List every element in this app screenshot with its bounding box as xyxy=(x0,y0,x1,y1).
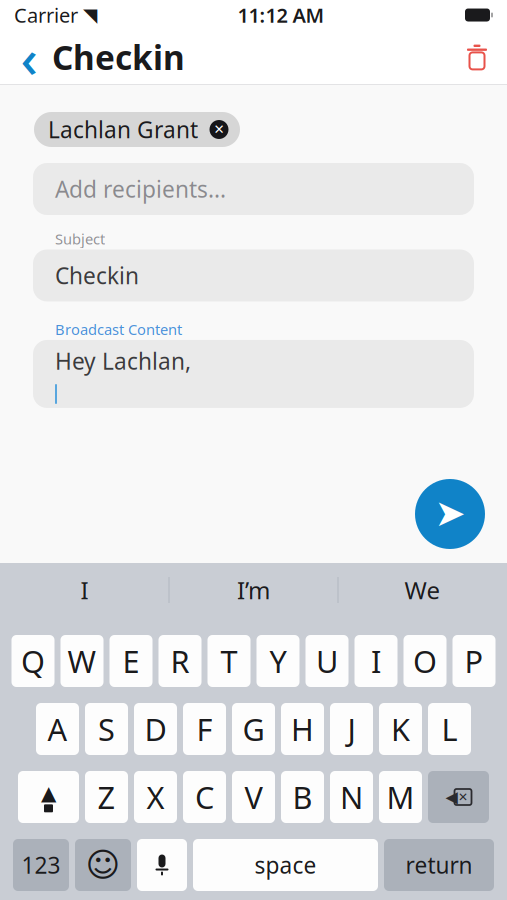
button[interactable]: P xyxy=(452,635,495,687)
button[interactable]: D xyxy=(134,703,177,755)
staticText: X xyxy=(146,777,164,817)
staticText: G xyxy=(242,709,264,749)
staticText: Hey Lachlan, xyxy=(55,346,191,376)
staticText: space xyxy=(254,850,316,880)
button[interactable]: Q xyxy=(11,635,54,687)
staticText: 123 xyxy=(21,850,60,880)
button[interactable]: I xyxy=(0,565,168,615)
staticText: D xyxy=(144,709,166,749)
button[interactable]: Send xyxy=(415,479,485,549)
button[interactable]: B xyxy=(281,771,324,823)
button[interactable]: X xyxy=(134,771,177,823)
staticText: ▲ xyxy=(41,782,56,804)
button[interactable]: E xyxy=(109,635,152,687)
button[interactable]: G xyxy=(232,703,275,755)
staticText: I’m xyxy=(237,574,270,606)
button[interactable]: Delete xyxy=(428,771,489,823)
staticText: Broadcast Content xyxy=(55,319,182,339)
button[interactable]: Y xyxy=(256,635,299,687)
button[interactable]: Hey Lachlan, xyxy=(33,340,474,408)
staticText: M xyxy=(386,777,414,817)
staticText: L xyxy=(441,709,457,749)
button[interactable]: R xyxy=(158,635,201,687)
button[interactable]: Remove recipient xyxy=(209,119,229,139)
button[interactable]: I’m xyxy=(169,565,337,615)
staticText: ◀ xyxy=(445,788,457,806)
button[interactable]: A xyxy=(36,703,79,755)
staticText: We xyxy=(404,574,440,606)
staticText: C xyxy=(195,777,214,817)
staticText: B xyxy=(292,777,312,817)
button[interactable]: J xyxy=(330,703,373,755)
staticText: ➤ xyxy=(434,492,465,534)
staticText: 11:12 AM xyxy=(237,2,324,28)
staticText: Z xyxy=(97,777,115,817)
staticText: Y xyxy=(269,641,286,681)
button[interactable]: V xyxy=(232,771,275,823)
button[interactable]: W xyxy=(60,635,103,687)
button[interactable]: Back xyxy=(12,34,46,80)
staticText: A xyxy=(47,709,67,749)
staticText: R xyxy=(170,641,189,681)
staticText: I xyxy=(80,574,88,606)
staticText: ◥ xyxy=(83,4,97,26)
button[interactable]: M xyxy=(379,771,422,823)
button[interactable]: return xyxy=(384,839,494,891)
button[interactable]: F xyxy=(183,703,226,755)
staticText: Add recipients... xyxy=(55,174,226,204)
button[interactable]: Add recipients... xyxy=(33,163,474,215)
staticText: ✕ xyxy=(458,790,468,804)
staticText: ✕ xyxy=(213,122,224,137)
staticText: E xyxy=(122,641,139,681)
button[interactable]: Emoji xyxy=(75,839,131,891)
staticText: Lachlan Grant xyxy=(48,114,198,144)
button[interactable]: Dictation xyxy=(137,839,187,891)
staticText: W xyxy=(67,641,96,681)
button[interactable]: Z xyxy=(85,771,128,823)
staticText: I xyxy=(371,641,381,681)
button[interactable]: Shift xyxy=(18,771,79,823)
button[interactable]: L xyxy=(428,703,471,755)
staticText: H xyxy=(291,709,314,749)
button[interactable]: space xyxy=(193,839,378,891)
staticText: ‹ xyxy=(20,22,37,92)
button[interactable]: N xyxy=(330,771,373,823)
staticText: S xyxy=(98,709,115,749)
button[interactable]: H xyxy=(281,703,324,755)
staticText: Subject xyxy=(55,229,105,248)
staticText: N xyxy=(340,777,363,817)
staticText: F xyxy=(196,709,212,749)
button[interactable]: S xyxy=(85,703,128,755)
staticText: V xyxy=(244,777,262,817)
button[interactable]: O xyxy=(403,635,446,687)
staticText: Carrier xyxy=(14,2,78,28)
button[interactable]: I xyxy=(354,635,397,687)
button[interactable]: C xyxy=(183,771,226,823)
staticText: Checkin xyxy=(55,260,139,290)
button[interactable]: 123 xyxy=(13,839,69,891)
staticText: K xyxy=(391,709,410,749)
staticText: O xyxy=(413,641,437,681)
button[interactable]: T xyxy=(207,635,250,687)
staticText: J xyxy=(347,709,355,749)
staticText: U xyxy=(316,641,338,681)
button[interactable]: U xyxy=(305,635,348,687)
staticText: ☺ xyxy=(85,846,120,884)
button[interactable]: Delete xyxy=(457,35,497,79)
staticText: return xyxy=(405,850,472,880)
staticText: Q xyxy=(21,641,45,681)
staticText: T xyxy=(220,641,237,681)
staticText: P xyxy=(464,641,483,681)
staticText: Checkin xyxy=(52,35,185,79)
button[interactable]: We xyxy=(338,565,506,615)
button[interactable]: Checkin xyxy=(33,249,474,301)
button[interactable]: K xyxy=(379,703,422,755)
